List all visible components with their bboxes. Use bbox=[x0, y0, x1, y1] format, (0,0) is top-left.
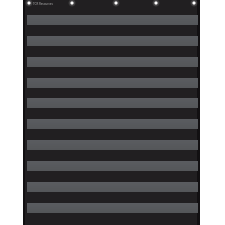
button[interactable]: Hanging grommet bbox=[68, 0, 76, 7]
button[interactable]: Hanging grommet bbox=[25, 0, 33, 7]
button[interactable]: Hanging grommet bbox=[152, 0, 160, 7]
button[interactable]: Hanging grommet bbox=[112, 0, 120, 7]
button[interactable]: Hanging grommet bbox=[190, 0, 198, 7]
button[interactable]: TCR Resources bbox=[33, 2, 53, 6]
